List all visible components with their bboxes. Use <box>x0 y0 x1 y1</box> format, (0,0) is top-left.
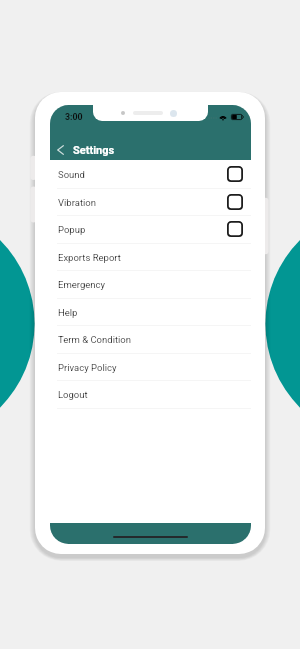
button[interactable]: Exports Report <box>50 243 251 271</box>
staticText: Vibration <box>58 197 96 208</box>
button[interactable]: Emergency <box>50 270 251 298</box>
staticText: Privacy Policy <box>58 362 117 373</box>
staticText: Logout <box>58 389 88 400</box>
button[interactable]: Logout <box>50 380 251 408</box>
button[interactable]: Back <box>51 138 70 162</box>
staticText: Emergency <box>58 279 105 290</box>
staticText: Settings <box>73 144 115 157</box>
staticText: Term & Condition <box>58 334 132 345</box>
button[interactable]: Sound <box>50 160 251 188</box>
staticText: Popup <box>58 224 86 235</box>
staticText: 3:00 <box>65 112 83 122</box>
button[interactable]: Term & Condition <box>50 325 251 353</box>
button[interactable]: Popup <box>50 215 251 243</box>
staticText: Help <box>58 307 78 318</box>
staticText: Sound <box>58 169 85 180</box>
button[interactable]: Vibration <box>50 188 251 216</box>
button[interactable]: Help <box>50 298 251 326</box>
button[interactable]: Privacy Policy <box>50 353 251 381</box>
staticText: Exports Report <box>58 252 121 263</box>
